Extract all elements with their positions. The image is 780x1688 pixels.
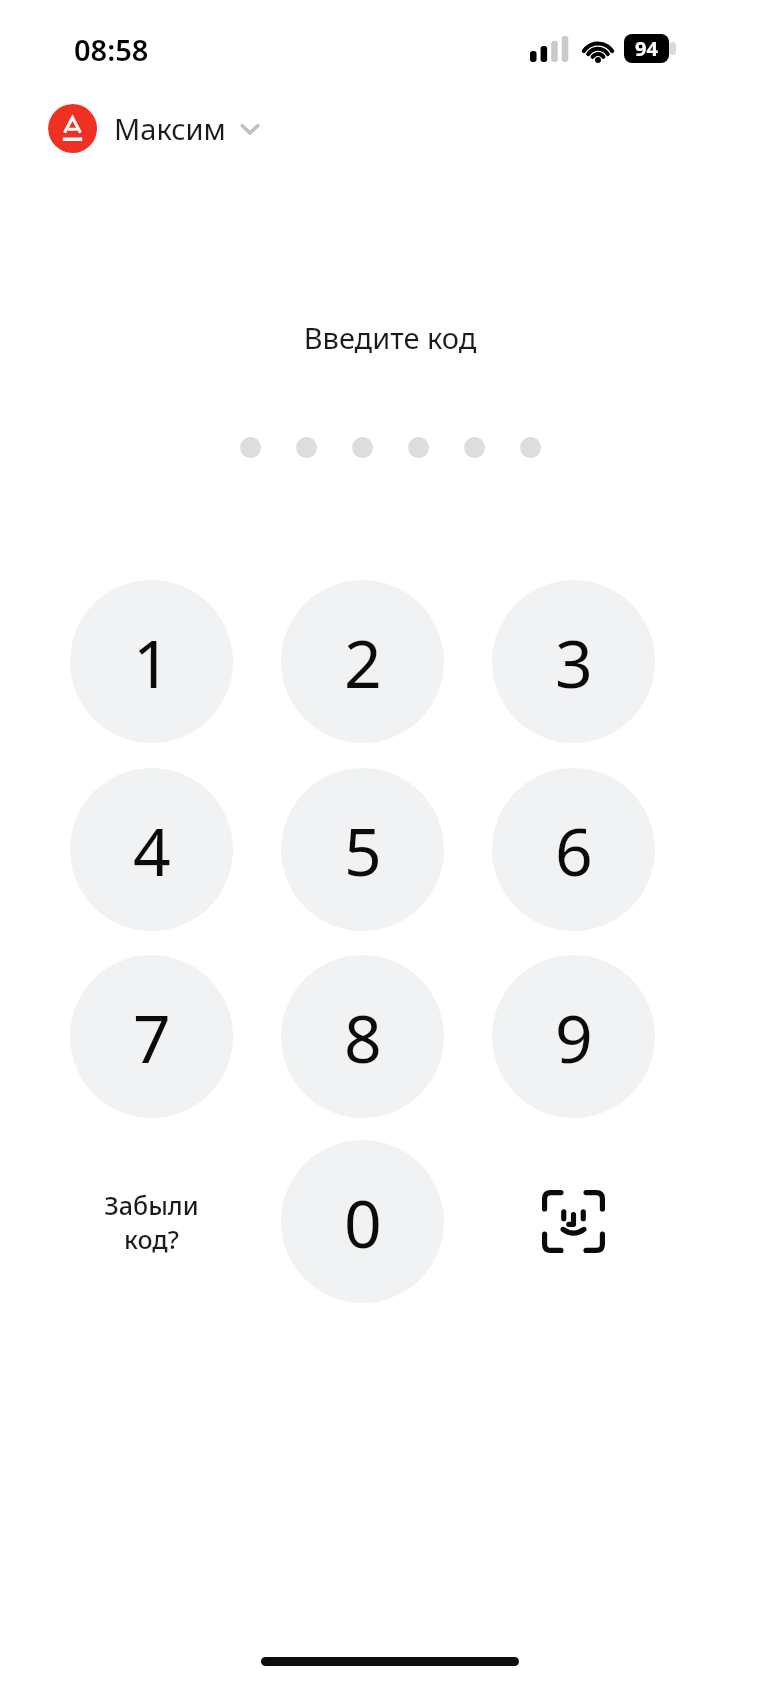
button[interactable]: 2 (281, 580, 444, 743)
staticText: Введите код (0, 318, 780, 357)
button[interactable]: Забыли код? (70, 1140, 233, 1303)
button[interactable]: Максим (48, 104, 270, 153)
staticText: 94 (635, 35, 658, 62)
button[interactable]: 7 (70, 955, 233, 1118)
button[interactable]: Face ID (492, 1140, 655, 1303)
staticText: 8 (344, 992, 382, 1082)
staticText: 4 (133, 805, 171, 895)
staticText: 9 (555, 992, 593, 1082)
staticText: 1 (133, 617, 171, 707)
staticText: 3 (555, 617, 593, 707)
button[interactable]: 1 (70, 580, 233, 743)
staticText: 0 (344, 1177, 382, 1267)
button[interactable]: 4 (70, 768, 233, 931)
staticText: 2 (344, 617, 382, 707)
staticText: Забыли код? (104, 1188, 199, 1256)
button[interactable]: 3 (492, 580, 655, 743)
staticText: 5 (344, 805, 382, 895)
button[interactable]: 8 (281, 955, 444, 1118)
button[interactable]: 5 (281, 768, 444, 931)
staticText: 6 (555, 805, 593, 895)
button[interactable]: 0 (281, 1140, 444, 1303)
staticText: Максим (114, 109, 226, 148)
staticText: 7 (133, 992, 171, 1082)
button[interactable]: 6 (492, 768, 655, 931)
button[interactable]: 9 (492, 955, 655, 1118)
staticText: 08:58 (74, 30, 149, 69)
